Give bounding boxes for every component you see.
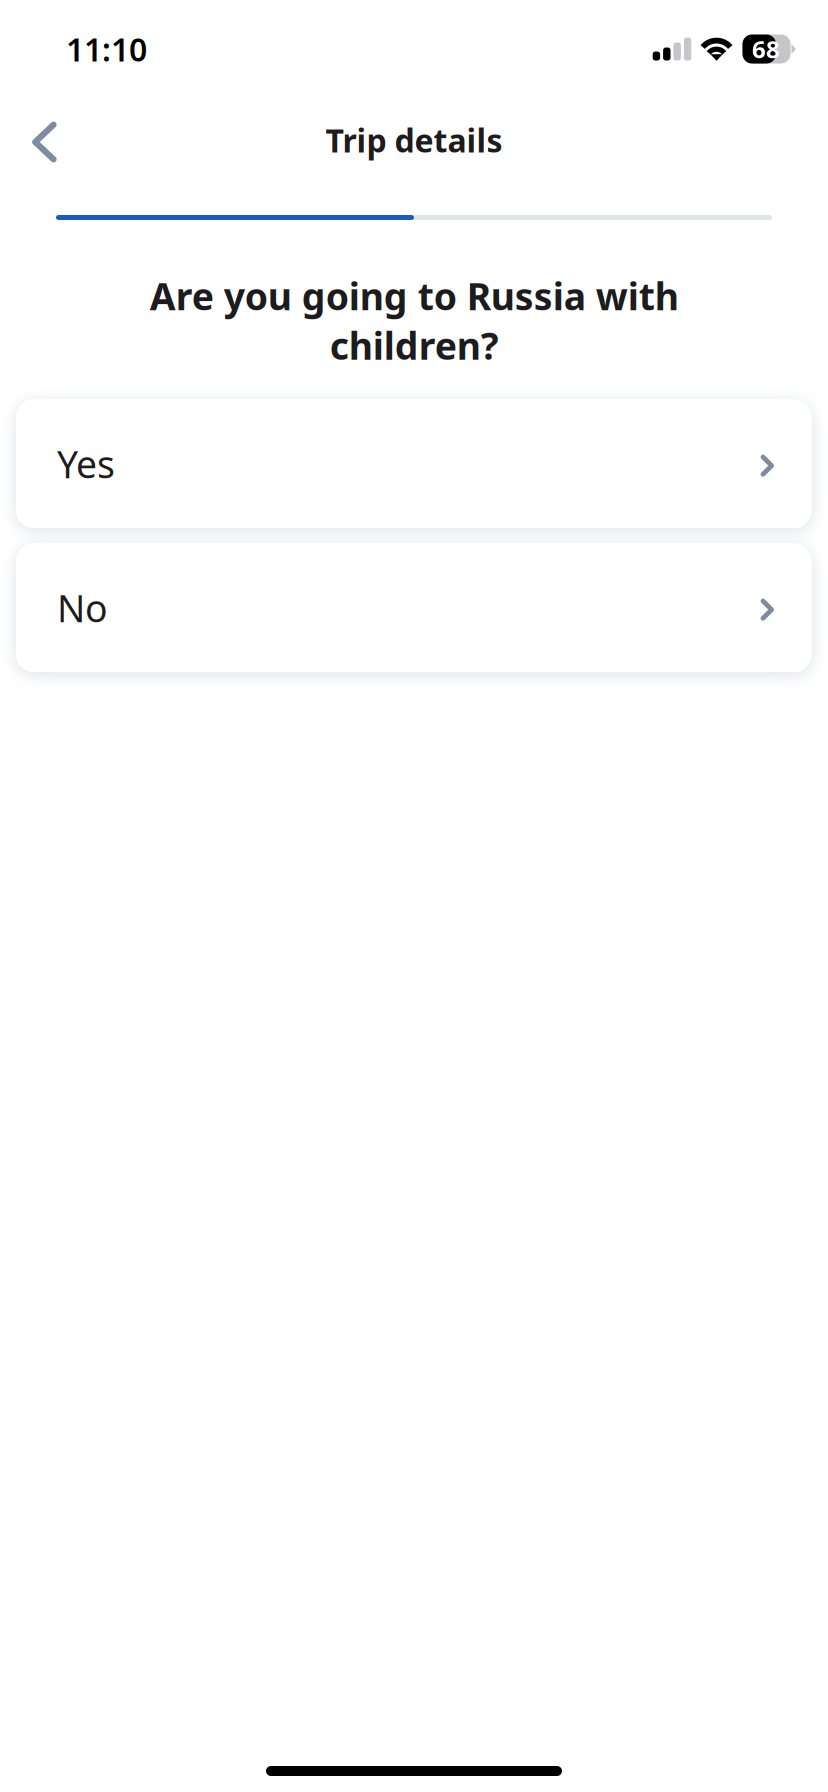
staticText: Are you going to Russia with children?: [149, 271, 678, 370]
staticText: Yes: [57, 439, 115, 488]
staticText: Trip details: [325, 119, 502, 161]
staticText: No: [57, 583, 108, 632]
staticText: 68: [752, 33, 780, 65]
button[interactable]: Yes: [16, 399, 812, 528]
button[interactable]: Back: [0, 103, 83, 176]
staticText: 11:10: [66, 28, 147, 70]
button[interactable]: No: [16, 543, 812, 672]
